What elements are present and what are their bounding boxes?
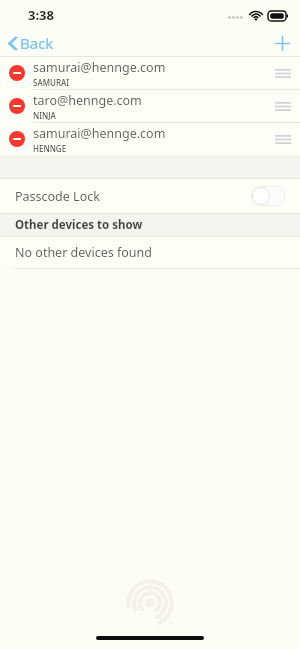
button[interactable]: Remove NINJA bbox=[0, 90, 33, 122]
button[interactable]: Remove NINJA bbox=[0, 90, 300, 122]
button[interactable]: Reorder NINJA bbox=[266, 90, 300, 122]
button[interactable]: Remove HENNGE bbox=[0, 123, 33, 155]
button[interactable]: No other devices found bbox=[0, 237, 300, 268]
staticText: Other devices to show bbox=[15, 217, 143, 233]
button[interactable]: Reorder SAMURAI bbox=[266, 57, 300, 89]
button[interactable]: Remove SAMURAI bbox=[0, 57, 300, 89]
staticText: SAMURAI bbox=[33, 77, 70, 88]
button[interactable]: Back bbox=[0, 30, 64, 56]
button[interactable]: Remove SAMURAI bbox=[0, 57, 33, 89]
staticText: Passcode Lock bbox=[15, 188, 251, 205]
button[interactable]: Passcode Lock toggle, off bbox=[251, 186, 285, 206]
staticText: samurai@hennge.com bbox=[33, 59, 166, 76]
button[interactable]: Remove HENNGE bbox=[0, 123, 300, 155]
staticText: taro@hennge.com bbox=[33, 92, 142, 109]
staticText: HENNGE bbox=[33, 143, 67, 154]
staticText: NINJA bbox=[33, 110, 56, 121]
button[interactable]: Reorder HENNGE bbox=[266, 123, 300, 155]
staticText: No other devices found bbox=[15, 244, 152, 261]
staticText: 3:38 bbox=[28, 6, 54, 24]
staticText: Back bbox=[20, 33, 54, 53]
button[interactable]: Passcode Lock bbox=[0, 179, 300, 213]
staticText: samurai@hennge.com bbox=[33, 125, 166, 142]
button[interactable]: Add device bbox=[264, 30, 300, 56]
